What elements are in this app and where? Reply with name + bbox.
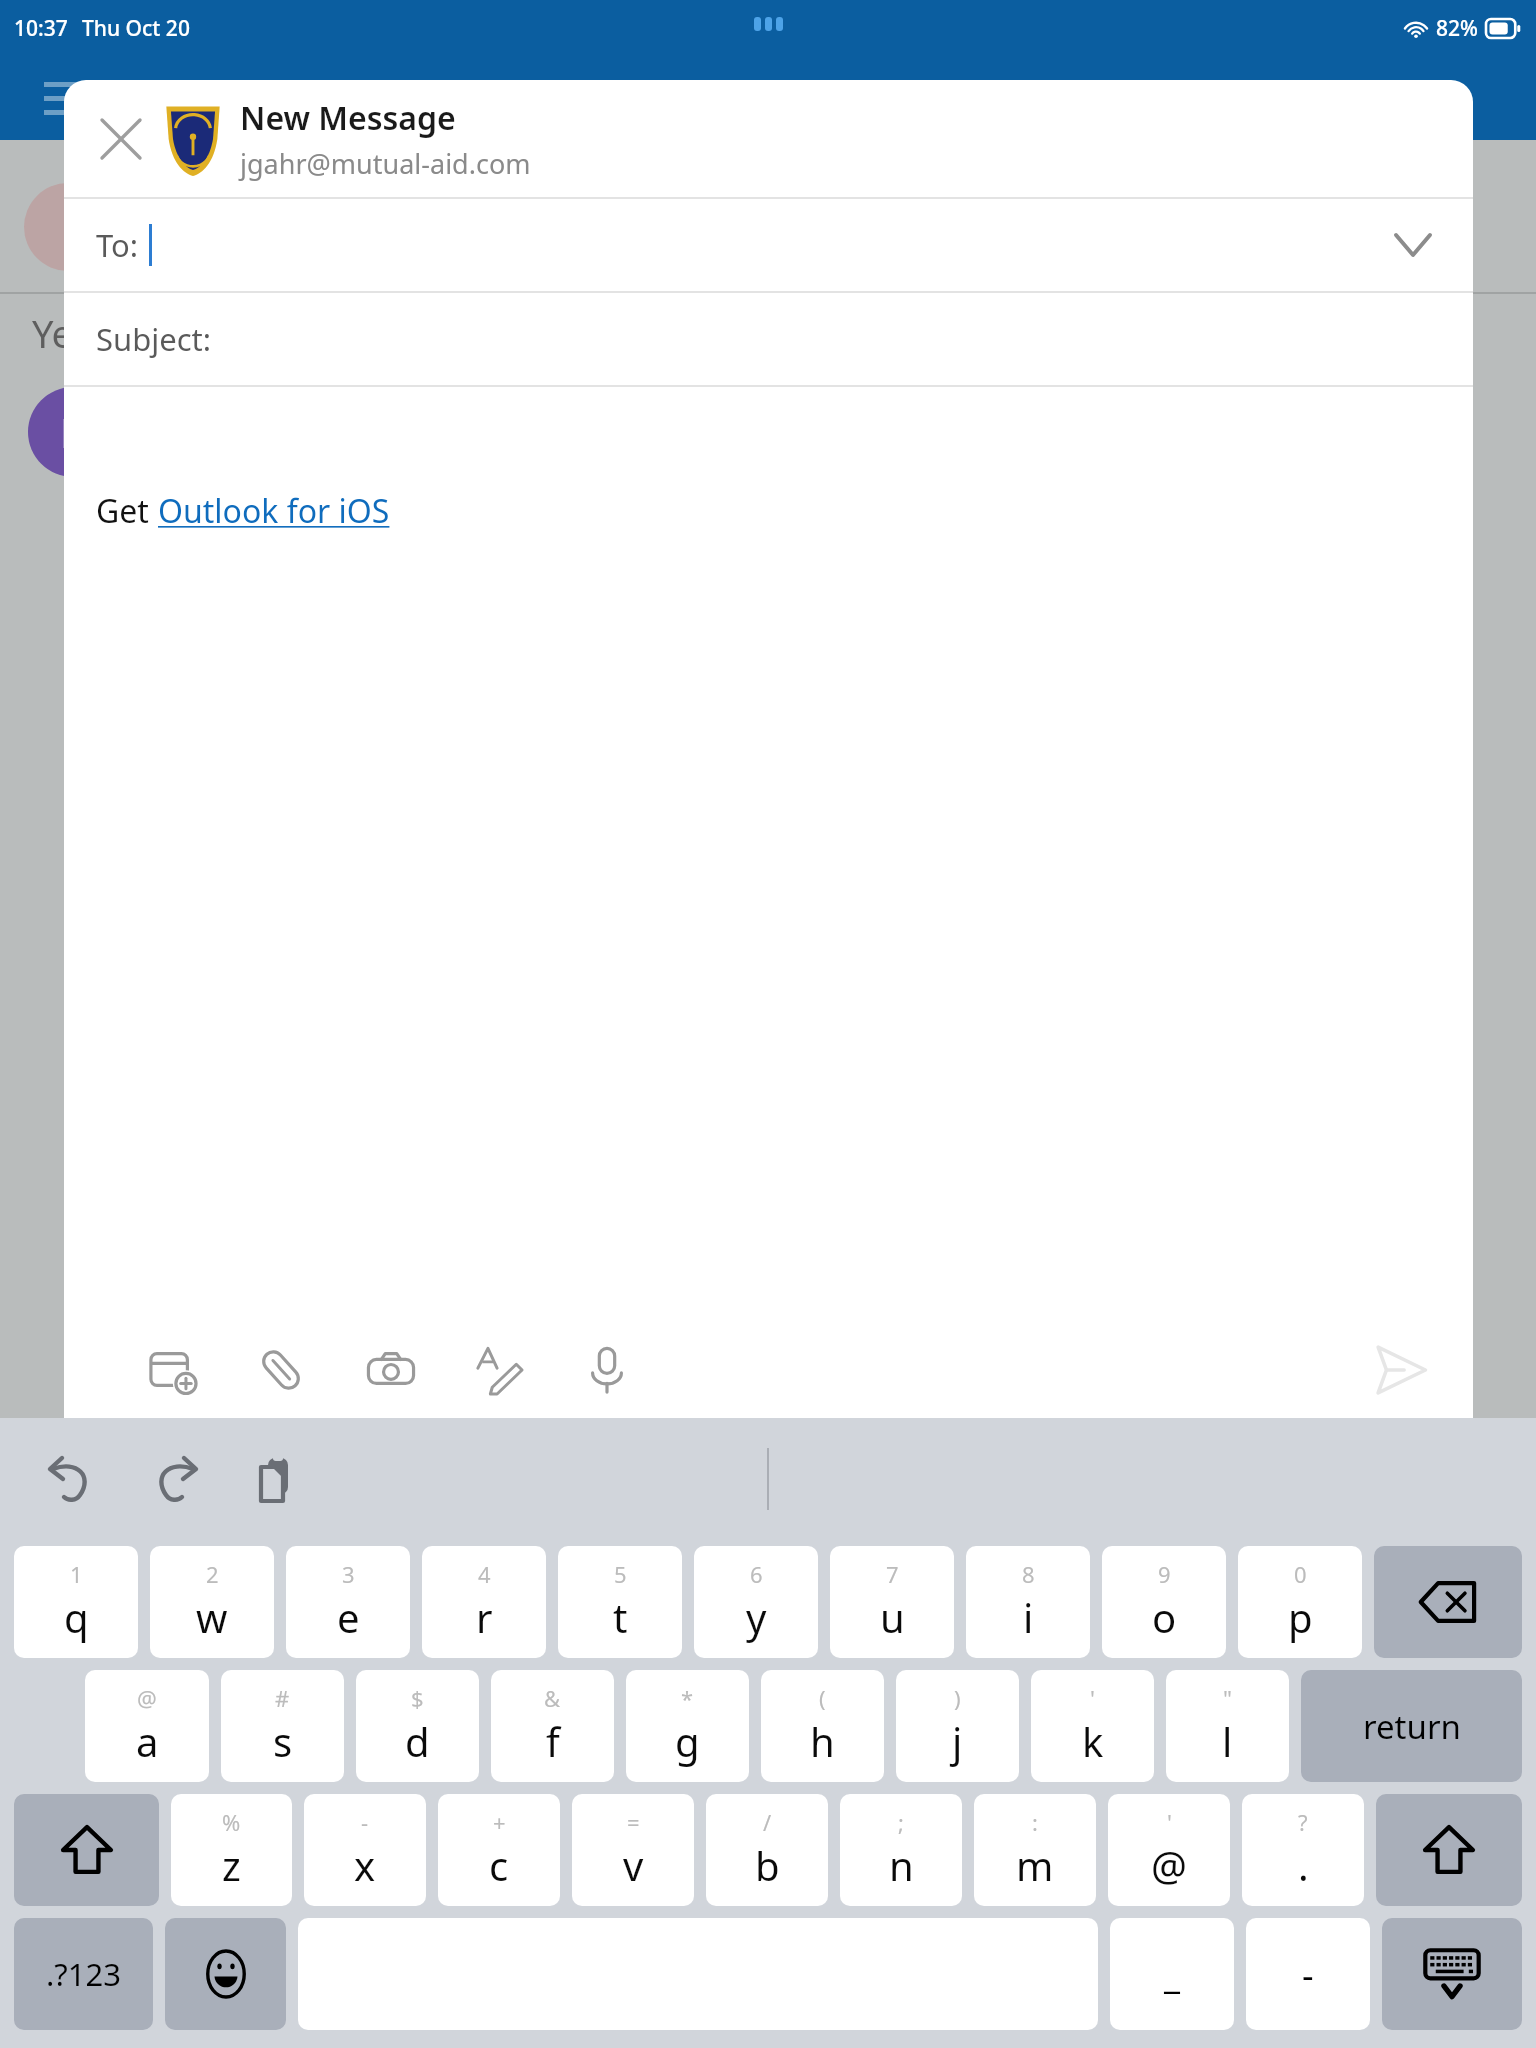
button[interactable]: @: [85, 1670, 209, 1782]
staticText: &: [544, 1683, 561, 1713]
button[interactable]: ': [1108, 1794, 1230, 1906]
staticText: ;: [898, 1807, 904, 1837]
button[interactable]: Hide keyboard: [1382, 1918, 1522, 2030]
staticText: B: [60, 405, 86, 459]
staticText: *: [681, 1683, 694, 1713]
staticText: _: [1164, 1950, 1180, 1999]
staticText: Subject:: [96, 318, 212, 360]
button[interactable]: ): [896, 1670, 1019, 1782]
staticText: c: [489, 1838, 509, 1892]
staticText: To:: [96, 224, 139, 266]
staticText: Thu Oct 20: [82, 14, 190, 43]
staticText: 5: [614, 1559, 627, 1589]
button[interactable]: 9: [1102, 1546, 1226, 1658]
staticText: .?123: [46, 1953, 121, 1995]
button[interactable]: 1: [14, 1546, 138, 1658]
staticText: j: [952, 1714, 963, 1768]
staticText: $: [411, 1683, 424, 1713]
staticText: i: [1023, 1590, 1034, 1644]
button[interactable]: -: [304, 1794, 426, 1906]
button[interactable]: Outlook for iOS: [158, 489, 390, 533]
staticText: l: [1222, 1714, 1233, 1768]
staticText: o: [1152, 1590, 1177, 1644]
staticText: g: [675, 1714, 700, 1768]
staticText: 3: [342, 1559, 355, 1589]
button[interactable]: .?123: [14, 1918, 153, 2030]
staticText: r: [476, 1590, 493, 1644]
button[interactable]: *: [626, 1670, 749, 1782]
button[interactable]: -: [1246, 1918, 1370, 2030]
staticText: =: [627, 1807, 640, 1837]
button[interactable]: Paste: [242, 1444, 312, 1514]
button[interactable]: Subject:: [64, 293, 1473, 385]
staticText: w: [196, 1590, 228, 1644]
button[interactable]: Attach file: [248, 1337, 314, 1403]
button[interactable]: To:: [64, 199, 1473, 291]
staticText: /: [763, 1807, 772, 1837]
staticText: h: [810, 1714, 835, 1768]
staticText: Get: [96, 489, 158, 533]
button[interactable]: Close: [84, 102, 158, 176]
button[interactable]: /: [706, 1794, 828, 1906]
staticText: e: [337, 1590, 360, 1644]
button[interactable]: _: [1110, 1918, 1234, 2030]
button[interactable]: Shift right: [1376, 1794, 1522, 1906]
button[interactable]: 5: [558, 1546, 682, 1658]
staticText: v: [623, 1838, 644, 1892]
button[interactable]: 7: [830, 1546, 954, 1658]
staticText: -: [1302, 1950, 1314, 1999]
button[interactable]: 0: [1238, 1546, 1362, 1658]
staticText: t: [613, 1590, 628, 1644]
button[interactable]: +: [438, 1794, 560, 1906]
button[interactable]: Emoji: [165, 1918, 286, 2030]
button[interactable]: return: [1301, 1670, 1522, 1782]
button[interactable]: Camera: [358, 1337, 424, 1403]
staticText: 0: [1294, 1559, 1307, 1589]
button[interactable]: Insert card: [140, 1337, 206, 1403]
button[interactable]: ?: [1242, 1794, 1364, 1906]
button[interactable]: ': [1031, 1670, 1154, 1782]
button[interactable]: ": [1166, 1670, 1289, 1782]
button[interactable]: #: [221, 1670, 344, 1782]
button[interactable]: Backspace: [1374, 1546, 1522, 1658]
button[interactable]: Expand recipients: [1381, 213, 1445, 277]
staticText: b: [755, 1838, 780, 1892]
staticText: 82%: [1436, 14, 1478, 43]
staticText: s: [273, 1714, 293, 1768]
button[interactable]: (: [761, 1670, 884, 1782]
staticText: p: [1288, 1590, 1313, 1644]
button[interactable]: 3: [286, 1546, 410, 1658]
button[interactable]: 8: [966, 1546, 1090, 1658]
button[interactable]: =: [572, 1794, 694, 1906]
button[interactable]: Undo: [36, 1444, 106, 1514]
button[interactable]: ;: [840, 1794, 962, 1906]
button[interactable]: 2: [150, 1546, 274, 1658]
button[interactable]: Formatting: [466, 1337, 532, 1403]
button[interactable]: Send: [1365, 1334, 1437, 1406]
staticText: 2: [206, 1559, 219, 1589]
staticText: jgahr@mutual-aid.com: [240, 145, 531, 182]
button[interactable]: $: [356, 1670, 479, 1782]
button[interactable]: Redo: [140, 1444, 210, 1514]
staticText: +: [493, 1807, 506, 1837]
staticText: 6: [750, 1559, 763, 1589]
button[interactable]: %: [171, 1794, 292, 1906]
staticText: 1: [70, 1559, 83, 1589]
button[interactable]: Get: [64, 387, 1473, 1322]
button[interactable]: &: [491, 1670, 614, 1782]
staticText: q: [64, 1590, 89, 1644]
staticText: d: [405, 1714, 430, 1768]
button[interactable]: 6: [694, 1546, 818, 1658]
button[interactable]: 4: [422, 1546, 546, 1658]
button[interactable]: Dictate: [574, 1337, 640, 1403]
staticText: a: [136, 1714, 159, 1768]
staticText: f: [546, 1714, 560, 1768]
staticText: Ye: [32, 307, 74, 359]
staticText: -: [361, 1807, 369, 1837]
staticText: z: [222, 1838, 241, 1892]
button[interactable]: Shift: [14, 1794, 159, 1906]
staticText: ): [954, 1683, 961, 1713]
button[interactable]: :: [974, 1794, 1096, 1906]
staticText: u: [880, 1590, 905, 1644]
